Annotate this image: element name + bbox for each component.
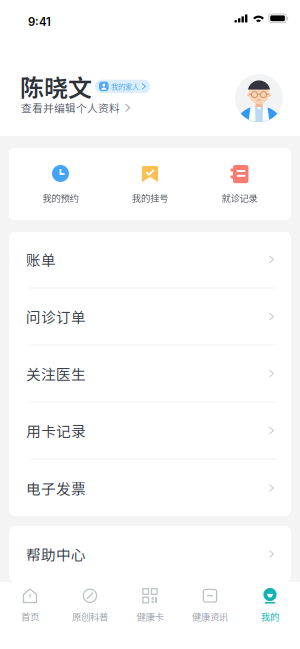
button[interactable]: 原创科普 bbox=[60, 582, 120, 622]
staticText: 就诊记录 bbox=[221, 191, 257, 204]
button[interactable]: 电子发票 bbox=[9, 459, 291, 516]
staticText: 9:41 bbox=[28, 15, 51, 29]
staticText: 我的预约 bbox=[42, 191, 78, 204]
staticText: 用卡记录 bbox=[26, 420, 86, 441]
button[interactable]: 我的家人 bbox=[95, 80, 150, 93]
staticText: 电子发票 bbox=[26, 477, 86, 499]
staticText: 健康资讯 bbox=[192, 610, 228, 623]
button[interactable]: 健康资讯 bbox=[180, 582, 240, 622]
button[interactable]: 问诊订单 bbox=[9, 288, 291, 345]
staticText: 账单 bbox=[26, 249, 56, 270]
staticText: 我的挂号 bbox=[132, 191, 168, 204]
staticText: 我的家人 bbox=[111, 81, 139, 92]
staticText: 关注医生 bbox=[26, 363, 86, 384]
staticText: 问诊订单 bbox=[26, 306, 86, 327]
button[interactable]: 关注医生 bbox=[9, 345, 291, 402]
button[interactable]: 我的挂号 bbox=[106, 148, 194, 220]
button[interactable]: 首页 bbox=[0, 582, 60, 622]
button[interactable]: 查看并编辑个人资料 bbox=[21, 97, 130, 118]
staticText: 陈晓文 bbox=[20, 69, 92, 104]
button[interactable]: 就诊记录 bbox=[195, 148, 283, 220]
staticText: 首页 bbox=[21, 610, 39, 623]
button[interactable]: 健康卡 bbox=[120, 582, 180, 622]
staticText: 我的 bbox=[261, 610, 279, 623]
staticText: 健康卡 bbox=[136, 610, 163, 623]
button[interactable]: 帮助中心 bbox=[9, 525, 291, 582]
staticText: 查看并编辑个人资料 bbox=[21, 100, 120, 115]
button[interactable]: 我的预约 bbox=[16, 148, 104, 220]
button[interactable]: 我的 bbox=[240, 582, 300, 622]
button[interactable]: 账单 bbox=[9, 231, 291, 288]
staticText: 帮助中心 bbox=[26, 543, 86, 565]
button[interactable]: 用卡记录 bbox=[9, 402, 291, 459]
button[interactable]: Profile photo bbox=[235, 74, 283, 122]
staticText: 原创科普 bbox=[72, 610, 108, 623]
